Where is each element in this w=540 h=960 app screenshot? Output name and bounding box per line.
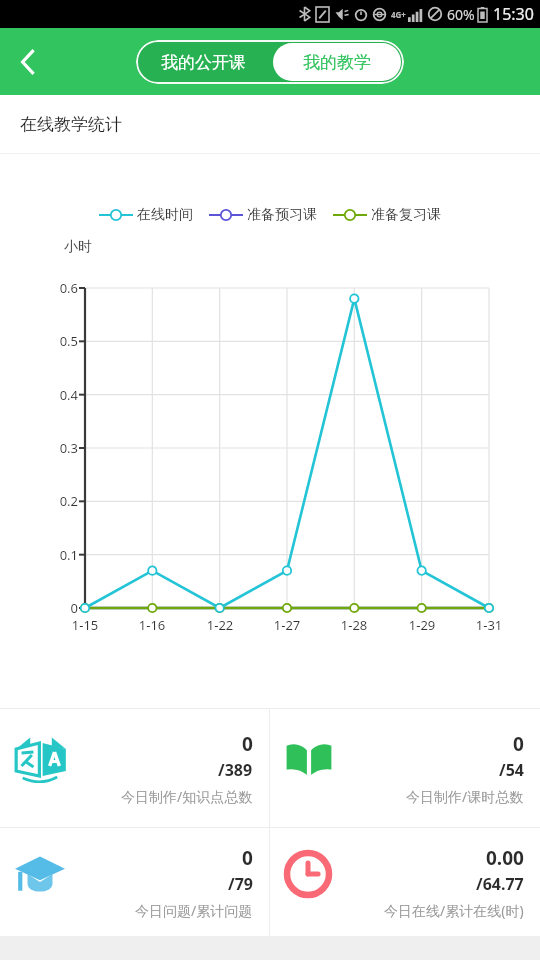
- staticText: 0.00: [486, 845, 524, 871]
- button[interactable]: 0: [0, 828, 269, 936]
- staticText: 我的公开课: [161, 52, 246, 73]
- staticText: 1-15: [63, 616, 107, 634]
- button[interactable]: Back: [8, 42, 48, 82]
- staticText: 1-29: [400, 616, 444, 634]
- staticText: 1-16: [130, 616, 174, 634]
- staticText: 今日制作/知识点总数: [121, 787, 253, 806]
- button[interactable]: 0: [0, 709, 269, 827]
- staticText: 60%: [447, 5, 475, 24]
- staticText: 0: [513, 731, 524, 757]
- staticText: 0.3: [48, 439, 78, 457]
- staticText: /64.77: [476, 873, 524, 895]
- staticText: /79: [228, 873, 253, 895]
- button[interactable]: 我的公开课: [136, 40, 270, 84]
- button[interactable]: 我的教学: [273, 43, 401, 81]
- staticText: 15:30: [493, 3, 534, 25]
- button[interactable]: 0: [270, 709, 540, 827]
- staticText: 0: [48, 599, 78, 617]
- staticText: 我的教学: [303, 52, 371, 73]
- staticText: 小时: [64, 238, 92, 256]
- button[interactable]: 0.00: [270, 828, 540, 936]
- staticText: /54: [499, 759, 524, 781]
- staticText: 今日问题/累计问题: [135, 901, 253, 920]
- staticText: 1-31: [467, 616, 511, 634]
- staticText: 1-22: [198, 616, 242, 634]
- staticText: 1-27: [265, 616, 309, 634]
- staticText: 0.1: [48, 546, 78, 564]
- staticText: 0.6: [48, 279, 78, 297]
- staticText: 准备预习课: [247, 206, 317, 224]
- staticText: 0.5: [48, 332, 78, 350]
- staticText: 0.2: [48, 492, 78, 510]
- staticText: 在线教学统计: [20, 114, 122, 135]
- staticText: 今日制作/课时总数: [406, 787, 524, 806]
- staticText: 在线时间: [137, 206, 193, 224]
- staticText: 1-28: [332, 616, 376, 634]
- staticText: 0: [242, 845, 253, 871]
- staticText: 0: [242, 731, 253, 757]
- staticText: 今日在线/累计在线(时): [384, 901, 524, 920]
- staticText: 4G+: [391, 9, 406, 20]
- staticText: /389: [218, 759, 253, 781]
- staticText: 0.4: [48, 386, 78, 404]
- staticText: 准备复习课: [371, 206, 441, 224]
